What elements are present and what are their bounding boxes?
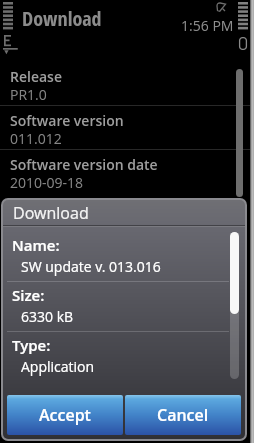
- button[interactable]: Release: [0, 62, 254, 105]
- staticText: Type:: [12, 335, 51, 355]
- button[interactable]: Software version: [0, 106, 254, 149]
- staticText: Application: [21, 357, 95, 376]
- staticText: 1:56 PM: [181, 16, 234, 35]
- staticText: 6330 kB: [21, 307, 74, 326]
- staticText: 2010-09-18: [10, 173, 84, 192]
- staticText: PR1.0: [10, 85, 47, 104]
- staticText: Name:: [12, 235, 60, 255]
- staticText: Accept: [39, 404, 91, 426]
- button[interactable]: Name:: [3, 231, 245, 281]
- other: Battery: [239, 37, 247, 50]
- staticText: SW update v. 013.016: [21, 257, 161, 276]
- staticText: Download: [13, 202, 89, 224]
- staticText: Size:: [12, 285, 45, 305]
- staticText: Software version date: [10, 155, 158, 174]
- other: Silent profile: [214, 1, 228, 15]
- button[interactable]: Type:: [3, 331, 245, 381]
- staticText: Software version: [10, 111, 124, 130]
- button[interactable]: Cancel: [125, 395, 241, 435]
- staticText: Download: [22, 5, 102, 32]
- staticText: Cancel: [157, 404, 209, 426]
- staticText: Release: [10, 67, 62, 86]
- staticText: 011.012: [10, 129, 62, 148]
- button[interactable]: Size:: [3, 281, 245, 331]
- button[interactable]: Accept: [7, 395, 123, 435]
- button[interactable]: Software version date: [0, 150, 254, 193]
